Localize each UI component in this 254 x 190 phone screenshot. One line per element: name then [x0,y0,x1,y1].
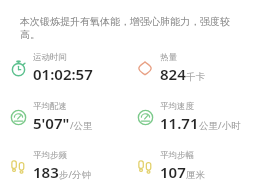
other: Average cadence [9,157,27,175]
button[interactable]: Average cadence [0,150,127,182]
button[interactable]: Duration [0,52,127,84]
button[interactable]: Average stride [127,150,254,182]
staticText: 平均配速 [33,101,67,112]
other: Calories [136,59,154,77]
other: Average speed [136,108,154,126]
other: Average stride [136,157,154,175]
other: Duration [9,59,27,77]
staticText: 平均速度 [160,101,194,112]
staticText: 厘米 [186,169,205,181]
staticText: 11.71 [160,113,199,133]
staticText: 本次锻炼提升有氧体能，增强心肺能力，强度较高。 [20,15,236,41]
staticText: 热量 [160,52,177,63]
staticText: 183 [33,162,59,182]
staticText: 运动时间 [33,52,67,63]
staticText: 步/分钟 [59,168,92,181]
staticText: /公里 [70,119,93,132]
staticText: 千卡 [186,71,205,83]
button[interactable]: Average speed [127,101,254,133]
other: Average pace [9,108,27,126]
staticText: 107 [160,162,186,182]
button[interactable]: Average pace [0,101,127,133]
staticText: 5'07" [33,113,70,133]
staticText: 824 [160,64,186,84]
staticText: 平均步幅 [160,150,194,161]
staticText: 公里/小时 [199,119,241,132]
staticText: 平均步频 [33,150,67,161]
staticText: 01:02:57 [33,64,93,84]
button[interactable]: Calories [127,52,254,84]
